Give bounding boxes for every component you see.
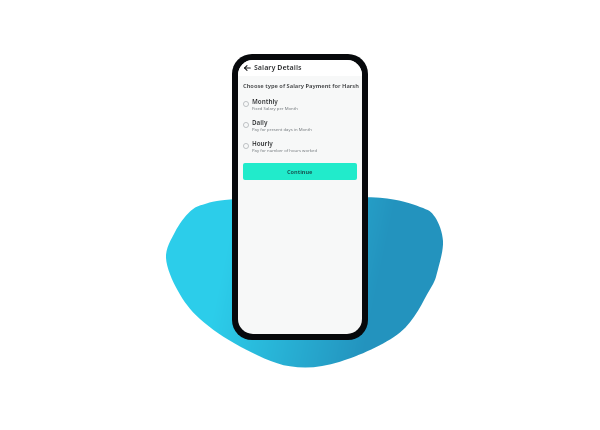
staticText: Monthly [252,97,278,105]
button[interactable]: Daily [238,114,362,135]
button[interactable]: Continue [243,163,357,180]
staticText: Pay for number of hours worked [252,147,318,153]
staticText: Daily [252,118,268,126]
button[interactable]: Monthly [238,93,362,114]
staticText: Pay for present days in Month [252,126,312,132]
button[interactable]: Hourly [238,135,362,156]
staticText: Continue [287,168,313,176]
staticText: Hourly [252,139,273,147]
staticText: Choose type of Salary Payment for Harsh [243,82,359,90]
staticText: Salary Details [254,63,302,73]
staticText: Fixed Salary per Month [252,105,298,111]
button[interactable]: Back [243,63,253,73]
